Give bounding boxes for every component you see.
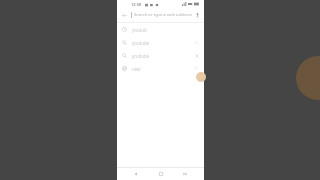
staticText: youtube video bbox=[132, 40, 158, 46]
button[interactable]: Edit query bbox=[192, 38, 201, 47]
button[interactable]: Recent apps bbox=[180, 169, 190, 179]
button[interactable]: youtube music bbox=[117, 49, 204, 62]
button[interactable]: Back bbox=[119, 10, 129, 20]
staticText: youtube music bbox=[132, 53, 155, 59]
button[interactable]: Home bbox=[156, 169, 166, 179]
button[interactable]: youtube video bbox=[117, 36, 204, 49]
staticText: news bbox=[132, 66, 141, 72]
button[interactable]: Voice search bbox=[192, 10, 202, 20]
button[interactable]: Remove suggestion bbox=[192, 51, 201, 60]
staticText: youtube bbox=[132, 27, 149, 33]
button[interactable]: news bbox=[117, 62, 204, 75]
staticText: 12:58 bbox=[131, 2, 142, 7]
button[interactable]: Back bbox=[131, 169, 141, 179]
button[interactable]: youtube bbox=[117, 23, 204, 36]
button[interactable]: Edit query bbox=[192, 64, 201, 73]
staticText: Search or type a web address bbox=[134, 12, 192, 18]
button[interactable]: Search or type a web address bbox=[129, 9, 192, 21]
